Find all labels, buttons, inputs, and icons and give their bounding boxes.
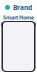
staticText: Brand <box>13 3 32 12</box>
staticText: Energy Control <box>0 21 36 28</box>
staticText: Smart Home <box>3 14 34 21</box>
